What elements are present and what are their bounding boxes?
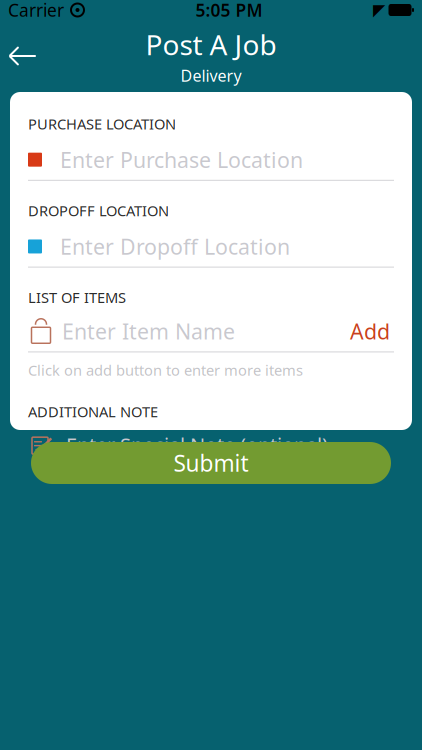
staticText: ◤ (373, 1, 385, 19)
staticText: ADDITIONAL NOTE (28, 402, 158, 421)
staticText: Click on add button to enter more items (28, 360, 303, 380)
button[interactable]: Add (346, 315, 394, 347)
staticText: Enter Special Note (optional) (66, 431, 328, 458)
staticText: 5:05 PM (195, 0, 262, 21)
staticText: Enter Item Name (62, 317, 235, 345)
staticText: Carrier (8, 0, 64, 21)
staticText: Submit (173, 448, 248, 478)
button[interactable]: Back (0, 33, 46, 79)
staticText: Add (350, 317, 390, 345)
staticText: PURCHASE LOCATION (28, 114, 176, 133)
staticText: LIST OF ITEMS (28, 288, 126, 307)
staticText: DROPOFF LOCATION (28, 201, 169, 220)
staticText: Enter Purchase Location (60, 145, 303, 174)
staticText: Enter Dropoff Location (60, 232, 290, 261)
button[interactable]: Submit (31, 442, 391, 484)
staticText: Delivery (180, 65, 241, 86)
staticText: Post A Job (145, 26, 276, 63)
